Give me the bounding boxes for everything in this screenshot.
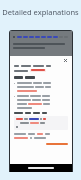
- button[interactable]: Response area: [46, 143, 68, 145]
- staticText: Detailed explanations: [0, 7, 81, 17]
- button[interactable]: Close: [10, 31, 72, 172]
- button[interactable]: Close: [63, 58, 68, 63]
